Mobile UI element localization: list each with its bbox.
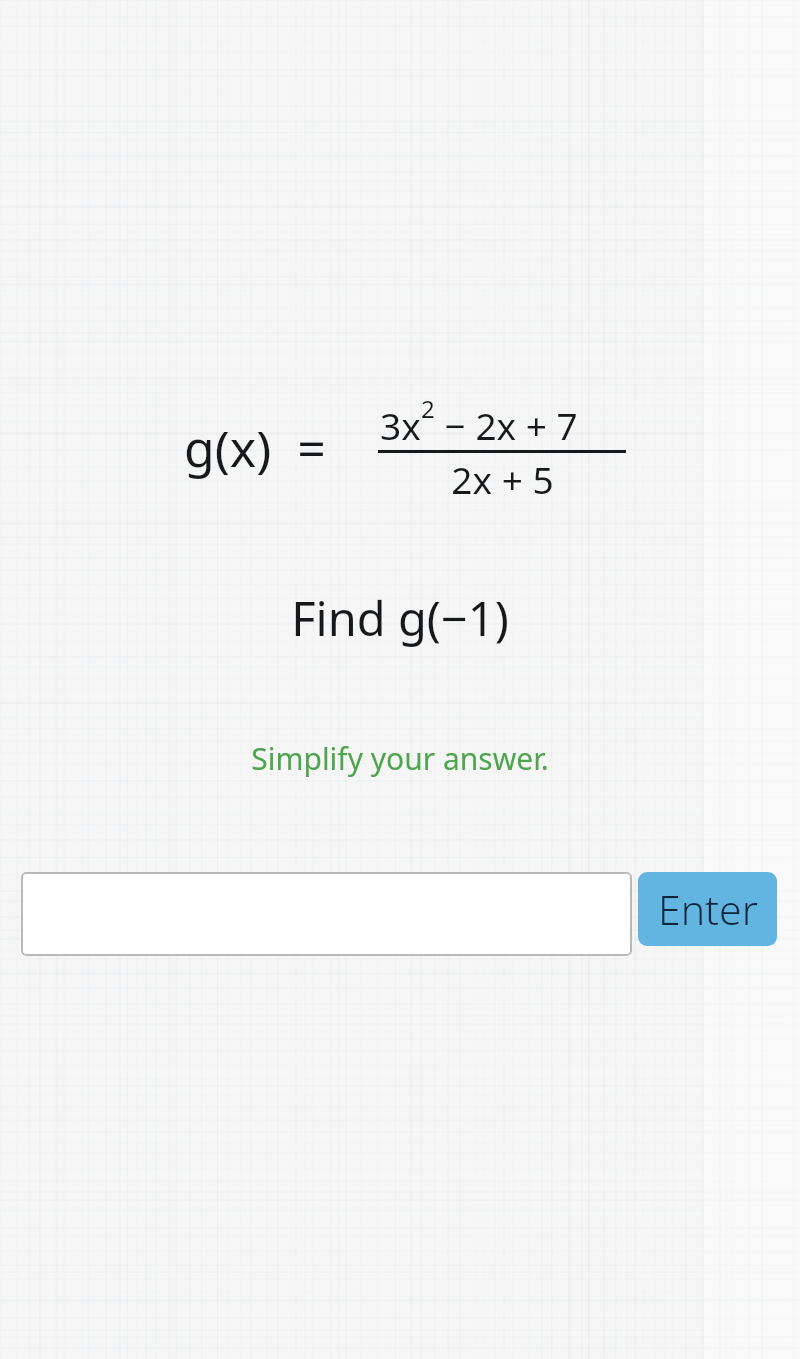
button[interactable]	[21, 872, 632, 956]
staticText: 2x + 5	[451, 454, 554, 504]
staticText: Simplify your answer.	[251, 738, 549, 779]
staticText: 2	[421, 392, 435, 425]
staticText: Find g(−1)	[291, 586, 509, 650]
button[interactable]: Enter	[638, 872, 777, 946]
staticText: − 2x + 7	[435, 400, 578, 450]
staticText: 3x	[380, 400, 421, 450]
staticText: Enter	[658, 881, 758, 937]
staticText: g(x) =	[184, 414, 326, 482]
